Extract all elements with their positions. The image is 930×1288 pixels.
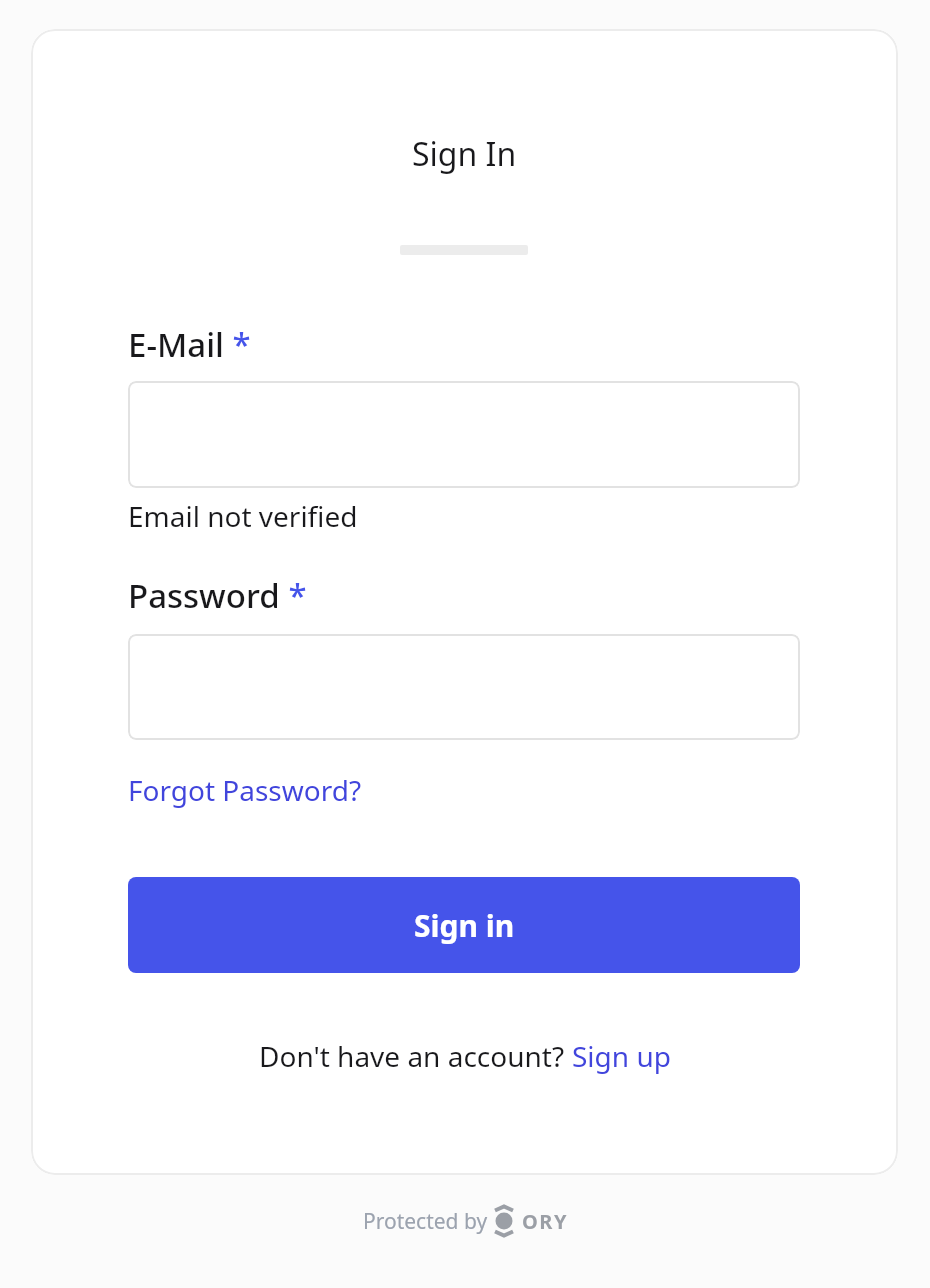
staticText: Protected by	[363, 1207, 493, 1236]
button[interactable]: Protected by	[363, 1206, 568, 1236]
staticText: Don't have an account?	[259, 1037, 572, 1075]
staticText: ORY	[522, 1208, 568, 1235]
staticText: E-Mail	[128, 322, 224, 367]
button[interactable]	[128, 381, 800, 488]
staticText: Password	[128, 573, 280, 618]
staticText: Sign In	[412, 132, 517, 176]
staticText: Sign up	[572, 1037, 671, 1075]
staticText: Email not verified	[128, 497, 358, 535]
button[interactable]: Forgot Password?	[128, 771, 362, 809]
button[interactable]: Sign in	[128, 877, 800, 973]
staticText: *	[280, 573, 307, 618]
staticText: *	[224, 322, 251, 367]
staticText: Sign in	[414, 905, 515, 946]
button[interactable]: Sign up	[572, 1037, 671, 1075]
button[interactable]	[128, 634, 800, 740]
